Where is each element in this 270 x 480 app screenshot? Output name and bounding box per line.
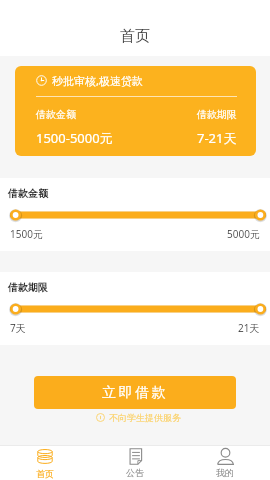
staticText: 5000元 (227, 227, 260, 241)
button[interactable]: 秒批审核,极速贷款 (15, 66, 256, 156)
staticText: 不向学生提供服务 (109, 412, 181, 423)
staticText: 公告 (126, 467, 144, 478)
button[interactable]: 首页 (0, 14, 270, 58)
button[interactable]: Coins (0, 446, 90, 480)
other: Coins (36, 448, 54, 466)
staticText: 1500元 (10, 227, 43, 241)
staticText: 我的 (216, 467, 234, 478)
button[interactable]: 立即借款 (34, 376, 236, 409)
other: Profile (217, 448, 234, 465)
staticText: 7天 (10, 321, 26, 335)
staticText: 首页 (120, 27, 150, 46)
other: Document (127, 448, 144, 465)
staticText: 21天 (238, 321, 260, 335)
staticText: 借款期限 (8, 281, 48, 294)
staticText: 首页 (36, 468, 54, 479)
staticText: 1500-5000元 (36, 129, 113, 147)
staticText: 借款金额 (8, 187, 48, 200)
staticText: 秒批审核,极速贷款 (52, 73, 143, 88)
button[interactable]: Profile (180, 446, 270, 480)
button[interactable]: Range slider (10, 209, 266, 221)
staticText: 借款金额 (36, 108, 76, 121)
button[interactable]: Document (90, 446, 180, 480)
staticText: 借款期限 (197, 108, 237, 121)
staticText: 7-21天 (197, 129, 237, 147)
staticText: 立即借款 (102, 384, 169, 402)
button[interactable]: Range slider (10, 303, 266, 315)
